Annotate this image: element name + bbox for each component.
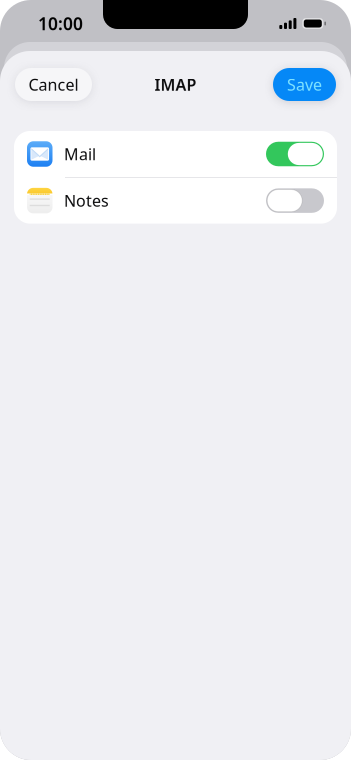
button[interactable]: Notes [14,178,337,224]
button[interactable]: Cancel [15,68,92,101]
staticText: Notes [64,190,109,211]
staticText: IMAP [154,74,196,95]
staticText: Mail [64,143,96,165]
staticText: Save [287,74,322,95]
staticText: 10:00 [38,12,83,35]
button[interactable]: Save [273,68,336,101]
staticText: Cancel [28,74,78,95]
button[interactable]: Mail [14,131,337,177]
